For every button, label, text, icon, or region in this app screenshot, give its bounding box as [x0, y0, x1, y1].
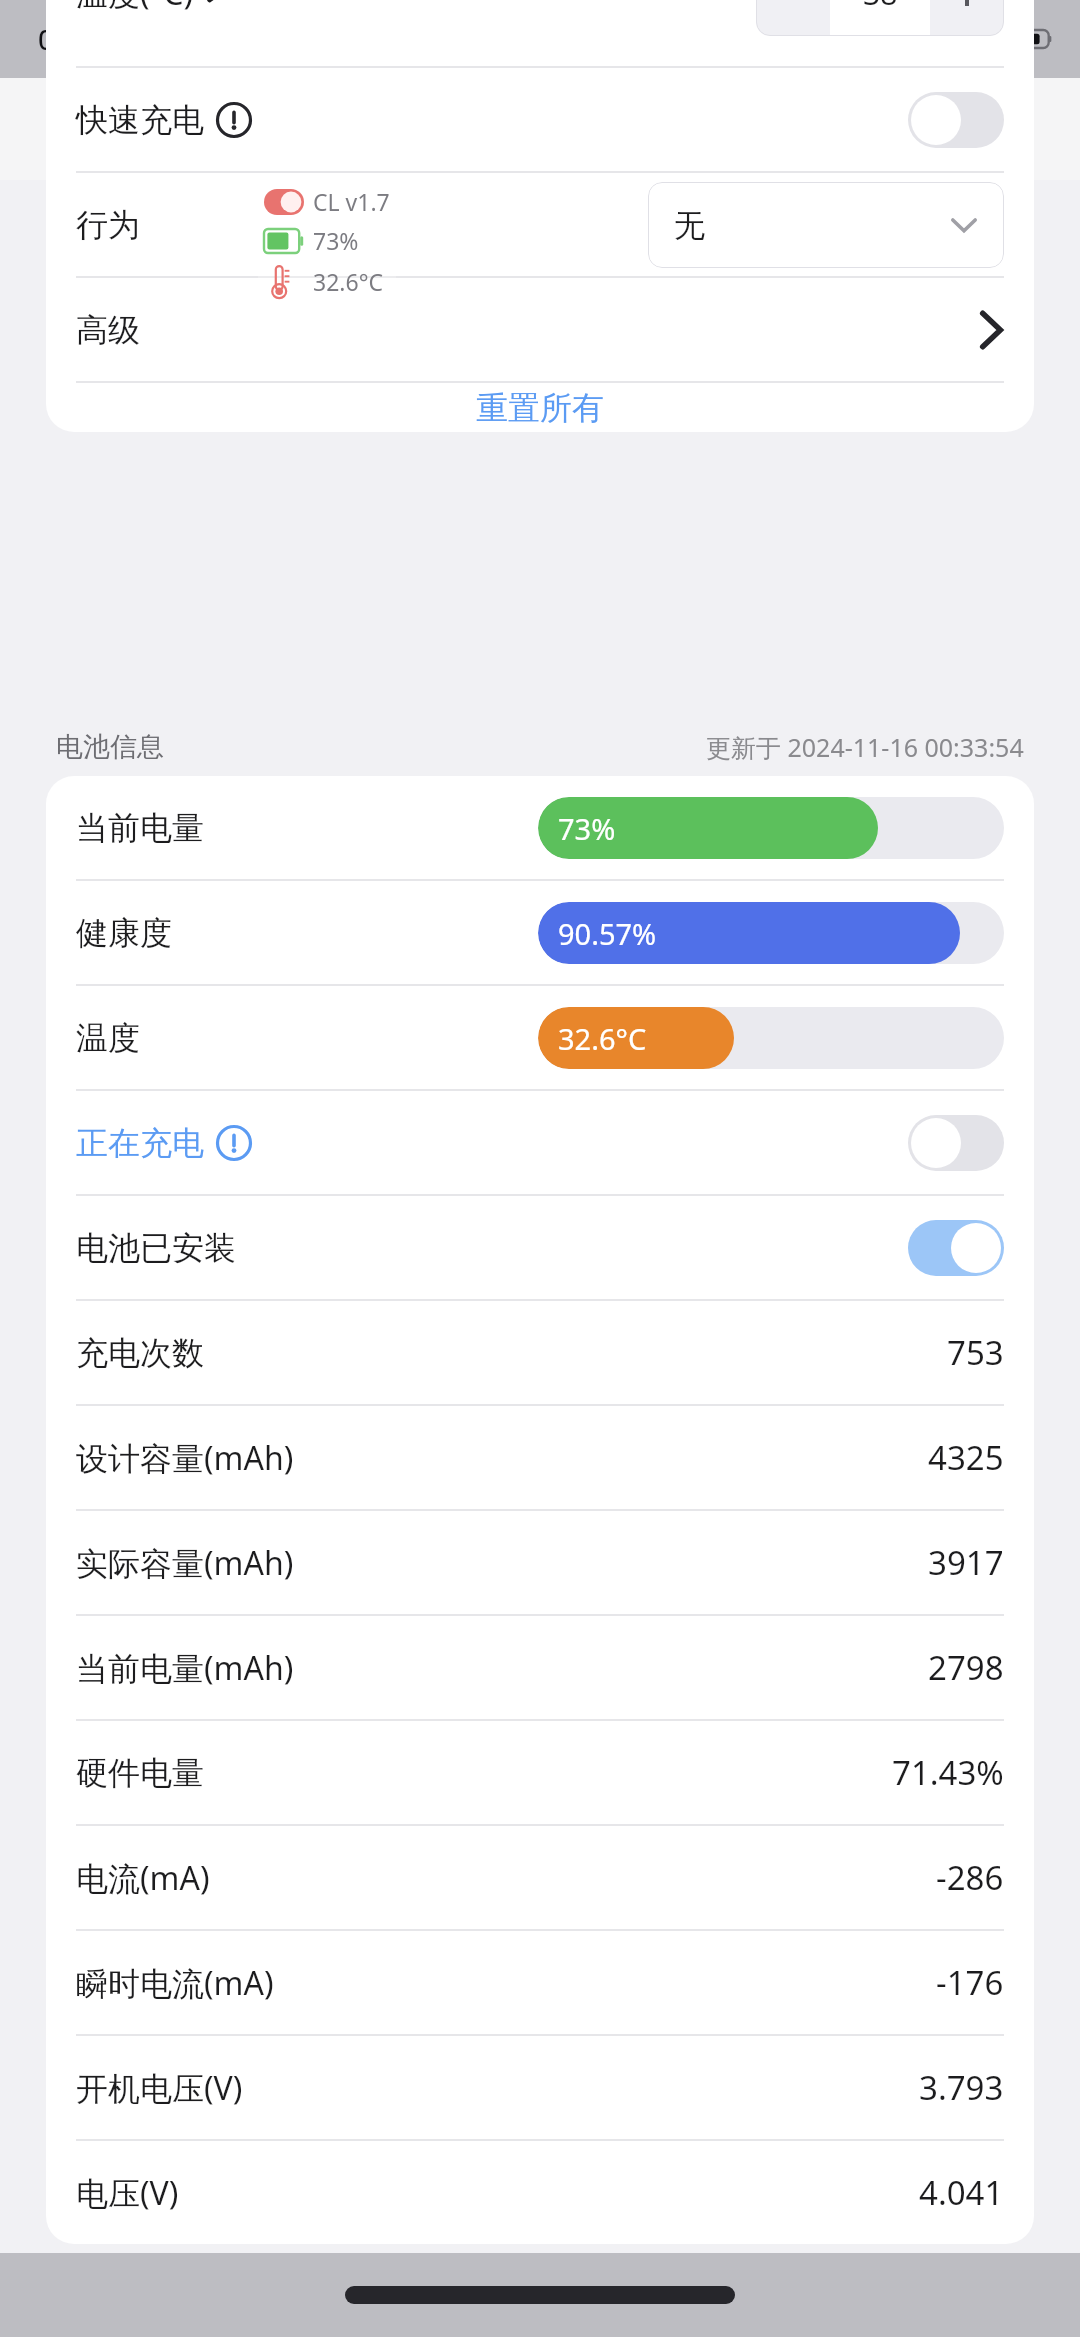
button[interactable]: 电压(V)	[46, 2141, 1034, 2244]
staticText: 实际容量(mAh)	[76, 1541, 294, 1585]
staticText: 电池已安装	[76, 1228, 236, 1268]
staticText: 当前电量	[76, 808, 306, 848]
button[interactable]: 无	[648, 182, 1004, 268]
button[interactable]: 瞬时电流(mA)	[46, 1931, 1034, 2034]
staticText: 00:34	[38, 21, 108, 58]
button[interactable]: 温度(°C)	[46, 0, 1034, 66]
button[interactable]: 重置所有	[46, 383, 1034, 432]
staticText: 开机电压(V)	[76, 2066, 243, 2110]
button[interactable]: On	[908, 1220, 1004, 1276]
staticText: 73%	[558, 809, 616, 848]
button[interactable]: 温度	[46, 986, 1034, 1089]
button[interactable]: 实际容量(mAh)	[46, 1511, 1034, 1614]
staticText: 4325	[928, 1435, 1004, 1480]
staticText: 正在充电	[76, 1123, 204, 1163]
button[interactable]: Increase	[930, 0, 1004, 36]
button[interactable]: 快速充电	[46, 68, 1034, 171]
staticText: 行为	[76, 205, 140, 245]
staticText: 高级	[76, 310, 140, 350]
button[interactable]: Off	[908, 1115, 1004, 1171]
button[interactable]: 硬件电量	[46, 1721, 1034, 1824]
button[interactable]: 电池已安装	[46, 1196, 1034, 1299]
button[interactable]: 充电次数	[46, 1301, 1034, 1404]
staticText: 温度(°C)	[76, 0, 194, 15]
button[interactable]: Home	[345, 2286, 735, 2304]
staticText: 3917	[928, 1540, 1004, 1585]
staticText: 健康度	[76, 913, 306, 953]
staticText: 温度	[76, 1018, 306, 1058]
staticText: 71.43%	[892, 1750, 1004, 1795]
staticText: 瞬时电流(mA)	[76, 1961, 274, 2005]
staticText: 当前电量(mAh)	[76, 1646, 294, 1690]
button[interactable]: 行为	[46, 173, 1034, 276]
staticText: -176	[936, 1960, 1004, 2005]
staticText: 电池信息	[56, 730, 164, 764]
staticText: CL v1.7	[313, 186, 390, 217]
staticText: 更新于 2024-11-16 00:33:54	[706, 730, 1024, 764]
staticText: 2798	[928, 1645, 1004, 1690]
button[interactable]: 开机电压(V)	[46, 2036, 1034, 2139]
staticText: 快速充电	[76, 100, 204, 140]
button[interactable]: Compass	[38, 97, 102, 161]
button[interactable]: 当前电量(mAh)	[46, 1616, 1034, 1719]
button[interactable]: Settings	[224, 97, 288, 161]
staticText: 电压(V)	[76, 2171, 179, 2215]
staticText: 重置所有	[476, 388, 604, 428]
staticText: 4.041	[919, 2170, 1004, 2215]
staticText: 无	[674, 206, 705, 245]
staticText: 32.6°C	[313, 266, 384, 297]
staticText: 90.57%	[558, 914, 657, 953]
staticText: 38	[863, 0, 898, 14]
button[interactable]: 电流(mA)	[46, 1826, 1034, 1929]
button[interactable]: Off	[908, 92, 1004, 148]
button[interactable]: 健康度	[46, 881, 1034, 984]
staticText: 3.793	[919, 2065, 1004, 2110]
button[interactable]: ChargeLimiter overlay	[264, 186, 390, 298]
staticText: 电流(mA)	[76, 1856, 210, 1900]
button[interactable]: 设计容量(mAh)	[46, 1406, 1034, 1509]
staticText: 753	[947, 1330, 1004, 1375]
button[interactable]: 高级	[46, 278, 1034, 381]
staticText: -286	[936, 1855, 1004, 1900]
button[interactable]: Decrease	[756, 0, 830, 36]
staticText: 硬件电量	[76, 1753, 204, 1793]
staticText: v1.7	[903, 112, 952, 146]
button[interactable]: 正在充电	[46, 1091, 1034, 1194]
button[interactable]: 38	[830, 0, 930, 36]
staticText: 充电次数	[76, 1333, 204, 1373]
staticText: 73%	[313, 225, 359, 256]
staticText: 32.6°C	[558, 1019, 647, 1058]
staticText: 设计容量(mAh)	[76, 1436, 294, 1480]
button[interactable]: 当前电量	[46, 776, 1034, 879]
